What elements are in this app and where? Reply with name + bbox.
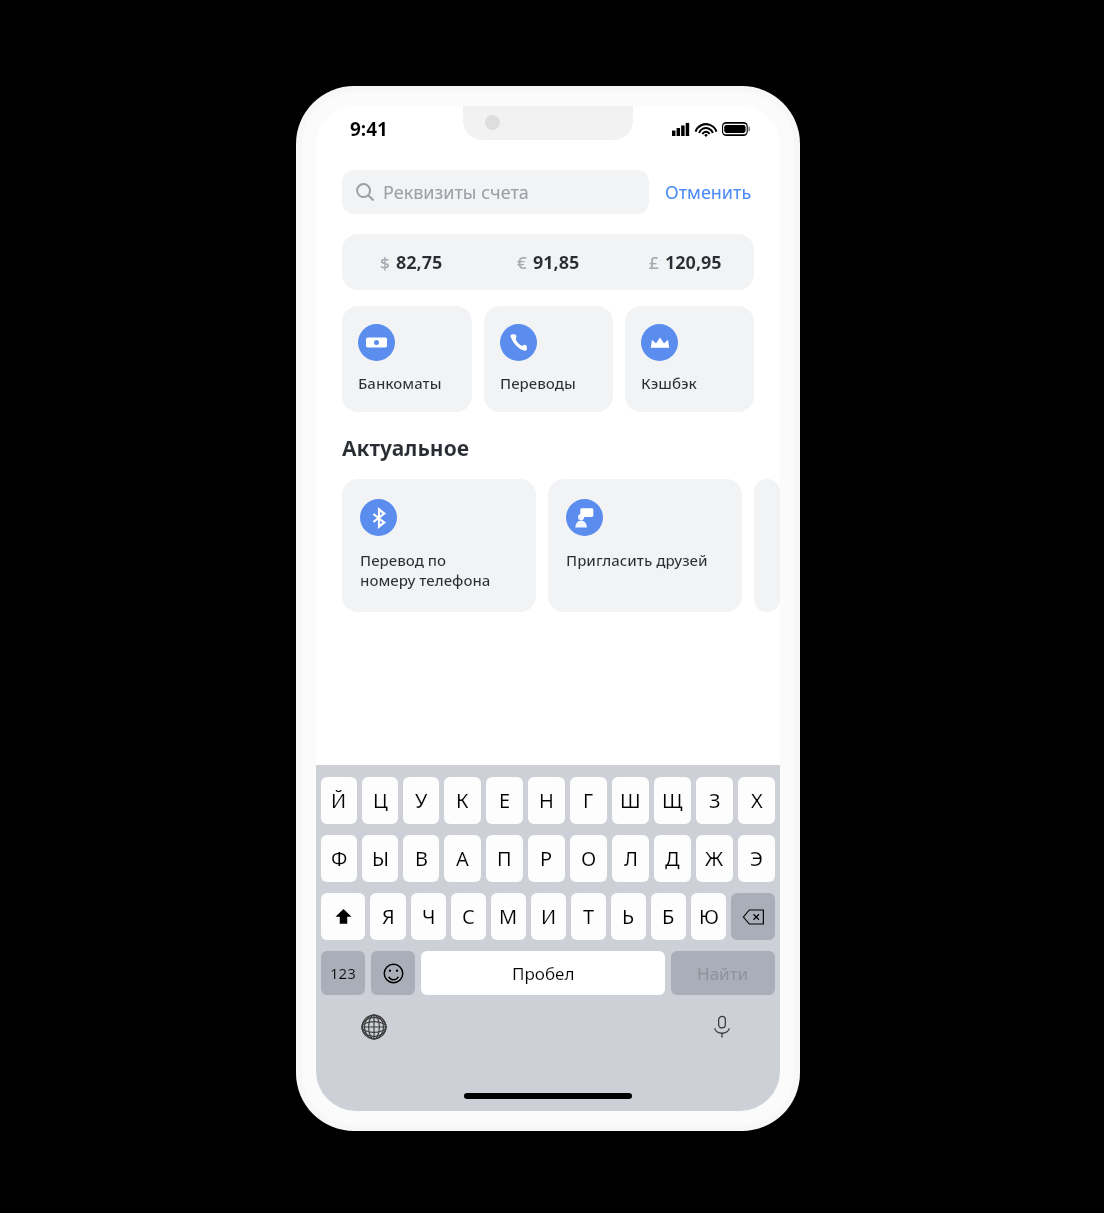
staticText: Й [331,787,347,814]
staticText: Банкоматы [358,373,442,393]
staticText: Ю [699,903,719,930]
button[interactable]: Ч [411,893,446,940]
staticText: У [415,787,428,814]
staticText: € [517,251,527,274]
staticText: Перевод по номеру телефона [360,550,491,590]
staticText: Я [382,903,395,930]
button[interactable]: Б [651,893,686,940]
staticText: Л [624,845,638,872]
button[interactable]: Щ [654,777,691,824]
button[interactable]: Ф [321,835,357,882]
button[interactable]: Е [486,777,523,824]
button[interactable]: Dictation [704,1009,740,1045]
staticText: 91,85 [533,250,580,275]
button[interactable]: Банкоматы [342,306,472,412]
staticText: Н [539,787,554,814]
staticText: Р [540,845,553,872]
button[interactable]: Т [571,893,606,940]
staticText: З [709,787,721,814]
staticText: Э [750,845,763,872]
button[interactable]: Кэшбэк [625,306,754,412]
button[interactable]: Ш [612,777,649,824]
button[interactable]: У [403,777,439,824]
staticText: Б [662,903,675,930]
button[interactable]: Перевод по номеру телефона [342,479,536,612]
button[interactable]: П [486,835,523,882]
staticText: Актуальное [342,434,469,463]
staticText: В [415,845,428,872]
button[interactable]: З [696,777,733,824]
button[interactable]: Ь [611,893,646,940]
staticText: Кэшбэк [641,373,697,393]
staticText: 82,75 [396,250,443,275]
button[interactable]: $ [342,234,754,290]
staticText: Ы [372,845,389,872]
staticText: О [581,845,597,872]
button[interactable]: Ж [696,835,733,882]
staticText: Найти [697,962,749,985]
staticText: Т [583,903,595,930]
button[interactable]: Пробел [421,951,665,995]
button[interactable]: Г [570,777,607,824]
button[interactable]: Пригласить друзей [548,479,742,612]
staticText: Ф [331,845,348,872]
button[interactable]: Э [738,835,775,882]
button[interactable]: Р [528,835,565,882]
button[interactable]: О [570,835,607,882]
button[interactable]: Я [370,893,406,940]
staticText: Реквизиты счета [383,180,529,205]
button[interactable]: Ы [362,835,398,882]
staticText: М [499,903,518,930]
staticText: Г [583,787,594,814]
staticText: Щ [662,787,683,814]
button[interactable]: Change keyboard [356,1009,392,1045]
staticText: 123 [330,963,356,983]
staticText: А [456,845,469,872]
button[interactable]: Найти [671,951,775,995]
staticText: К [456,787,469,814]
button[interactable]: В [403,835,439,882]
button[interactable]: Л [612,835,649,882]
button[interactable]: Ю [691,893,726,940]
staticText: 9:41 [350,116,388,142]
button[interactable]: М [491,893,526,940]
button[interactable]: Emoji [371,951,415,995]
staticText: Е [499,787,511,814]
staticText: Переводы [500,373,576,393]
button[interactable]: Д [654,835,691,882]
staticText: Ж [705,845,724,872]
staticText: $ [380,251,390,274]
button[interactable]: И [531,893,566,940]
button[interactable]: Й [321,777,357,824]
staticText: И [541,903,557,930]
staticText: Отменить [665,180,752,205]
staticText: Пробел [512,962,575,985]
button[interactable]: Отменить [663,174,754,211]
button[interactable]: С [451,893,486,940]
staticText: Ц [373,787,388,814]
button[interactable]: Ц [362,777,398,824]
staticText: Х [751,787,763,814]
button[interactable]: К [444,777,481,824]
staticText: £ [649,251,659,274]
staticText: Д [665,845,680,872]
staticText: 120,95 [665,250,722,275]
staticText: Ь [622,903,635,930]
button[interactable]: Переводы [484,306,613,412]
button[interactable]: Backspace [731,893,775,940]
staticText: Пригласить друзей [566,550,708,570]
button[interactable]: Н [528,777,565,824]
button[interactable]: Х [738,777,775,824]
button[interactable]: 123 [321,951,365,995]
button[interactable]: Реквизиты счета [342,170,649,214]
staticText: С [462,903,475,930]
staticText: П [497,845,512,872]
button[interactable]: Shift [321,893,365,940]
staticText: Ш [620,787,641,814]
button[interactable]: А [444,835,481,882]
staticText: Ч [422,903,436,930]
